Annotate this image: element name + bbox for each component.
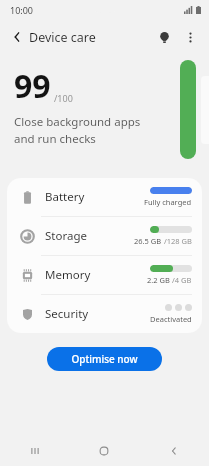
button[interactable]: Home [69, 436, 139, 466]
button[interactable]: Recents [0, 436, 69, 466]
staticText: Battery [45, 189, 85, 205]
button[interactable]: Back [139, 436, 209, 466]
staticText: Device care [29, 29, 96, 46]
staticText: 10:00 [10, 4, 34, 16]
staticText: Deactivated [150, 314, 192, 324]
staticText: Storage [45, 228, 87, 244]
staticText: Optimise now [71, 352, 138, 366]
button[interactable]: Back [0, 30, 28, 44]
button[interactable]: Security [7, 295, 202, 333]
button[interactable]: Battery [7, 178, 202, 216]
staticText: 99 [14, 64, 51, 108]
button[interactable]: More options [177, 24, 203, 50]
staticText: 26.5 GB [134, 236, 162, 246]
button[interactable]: Storage [7, 217, 202, 255]
staticText: /128 GB [164, 236, 192, 246]
staticText: Security [45, 306, 89, 322]
staticText: /4 GB [172, 275, 192, 285]
button[interactable]: Memory [7, 256, 202, 294]
staticText: 2.2 GB [147, 275, 170, 285]
button[interactable]: Tips [151, 24, 177, 50]
staticText: Fully charged [144, 197, 192, 207]
staticText: Memory [45, 267, 91, 283]
button[interactable]: Optimise now [47, 347, 162, 371]
staticText: /100 [54, 92, 73, 104]
staticText: Close background apps and run checks [14, 114, 141, 146]
